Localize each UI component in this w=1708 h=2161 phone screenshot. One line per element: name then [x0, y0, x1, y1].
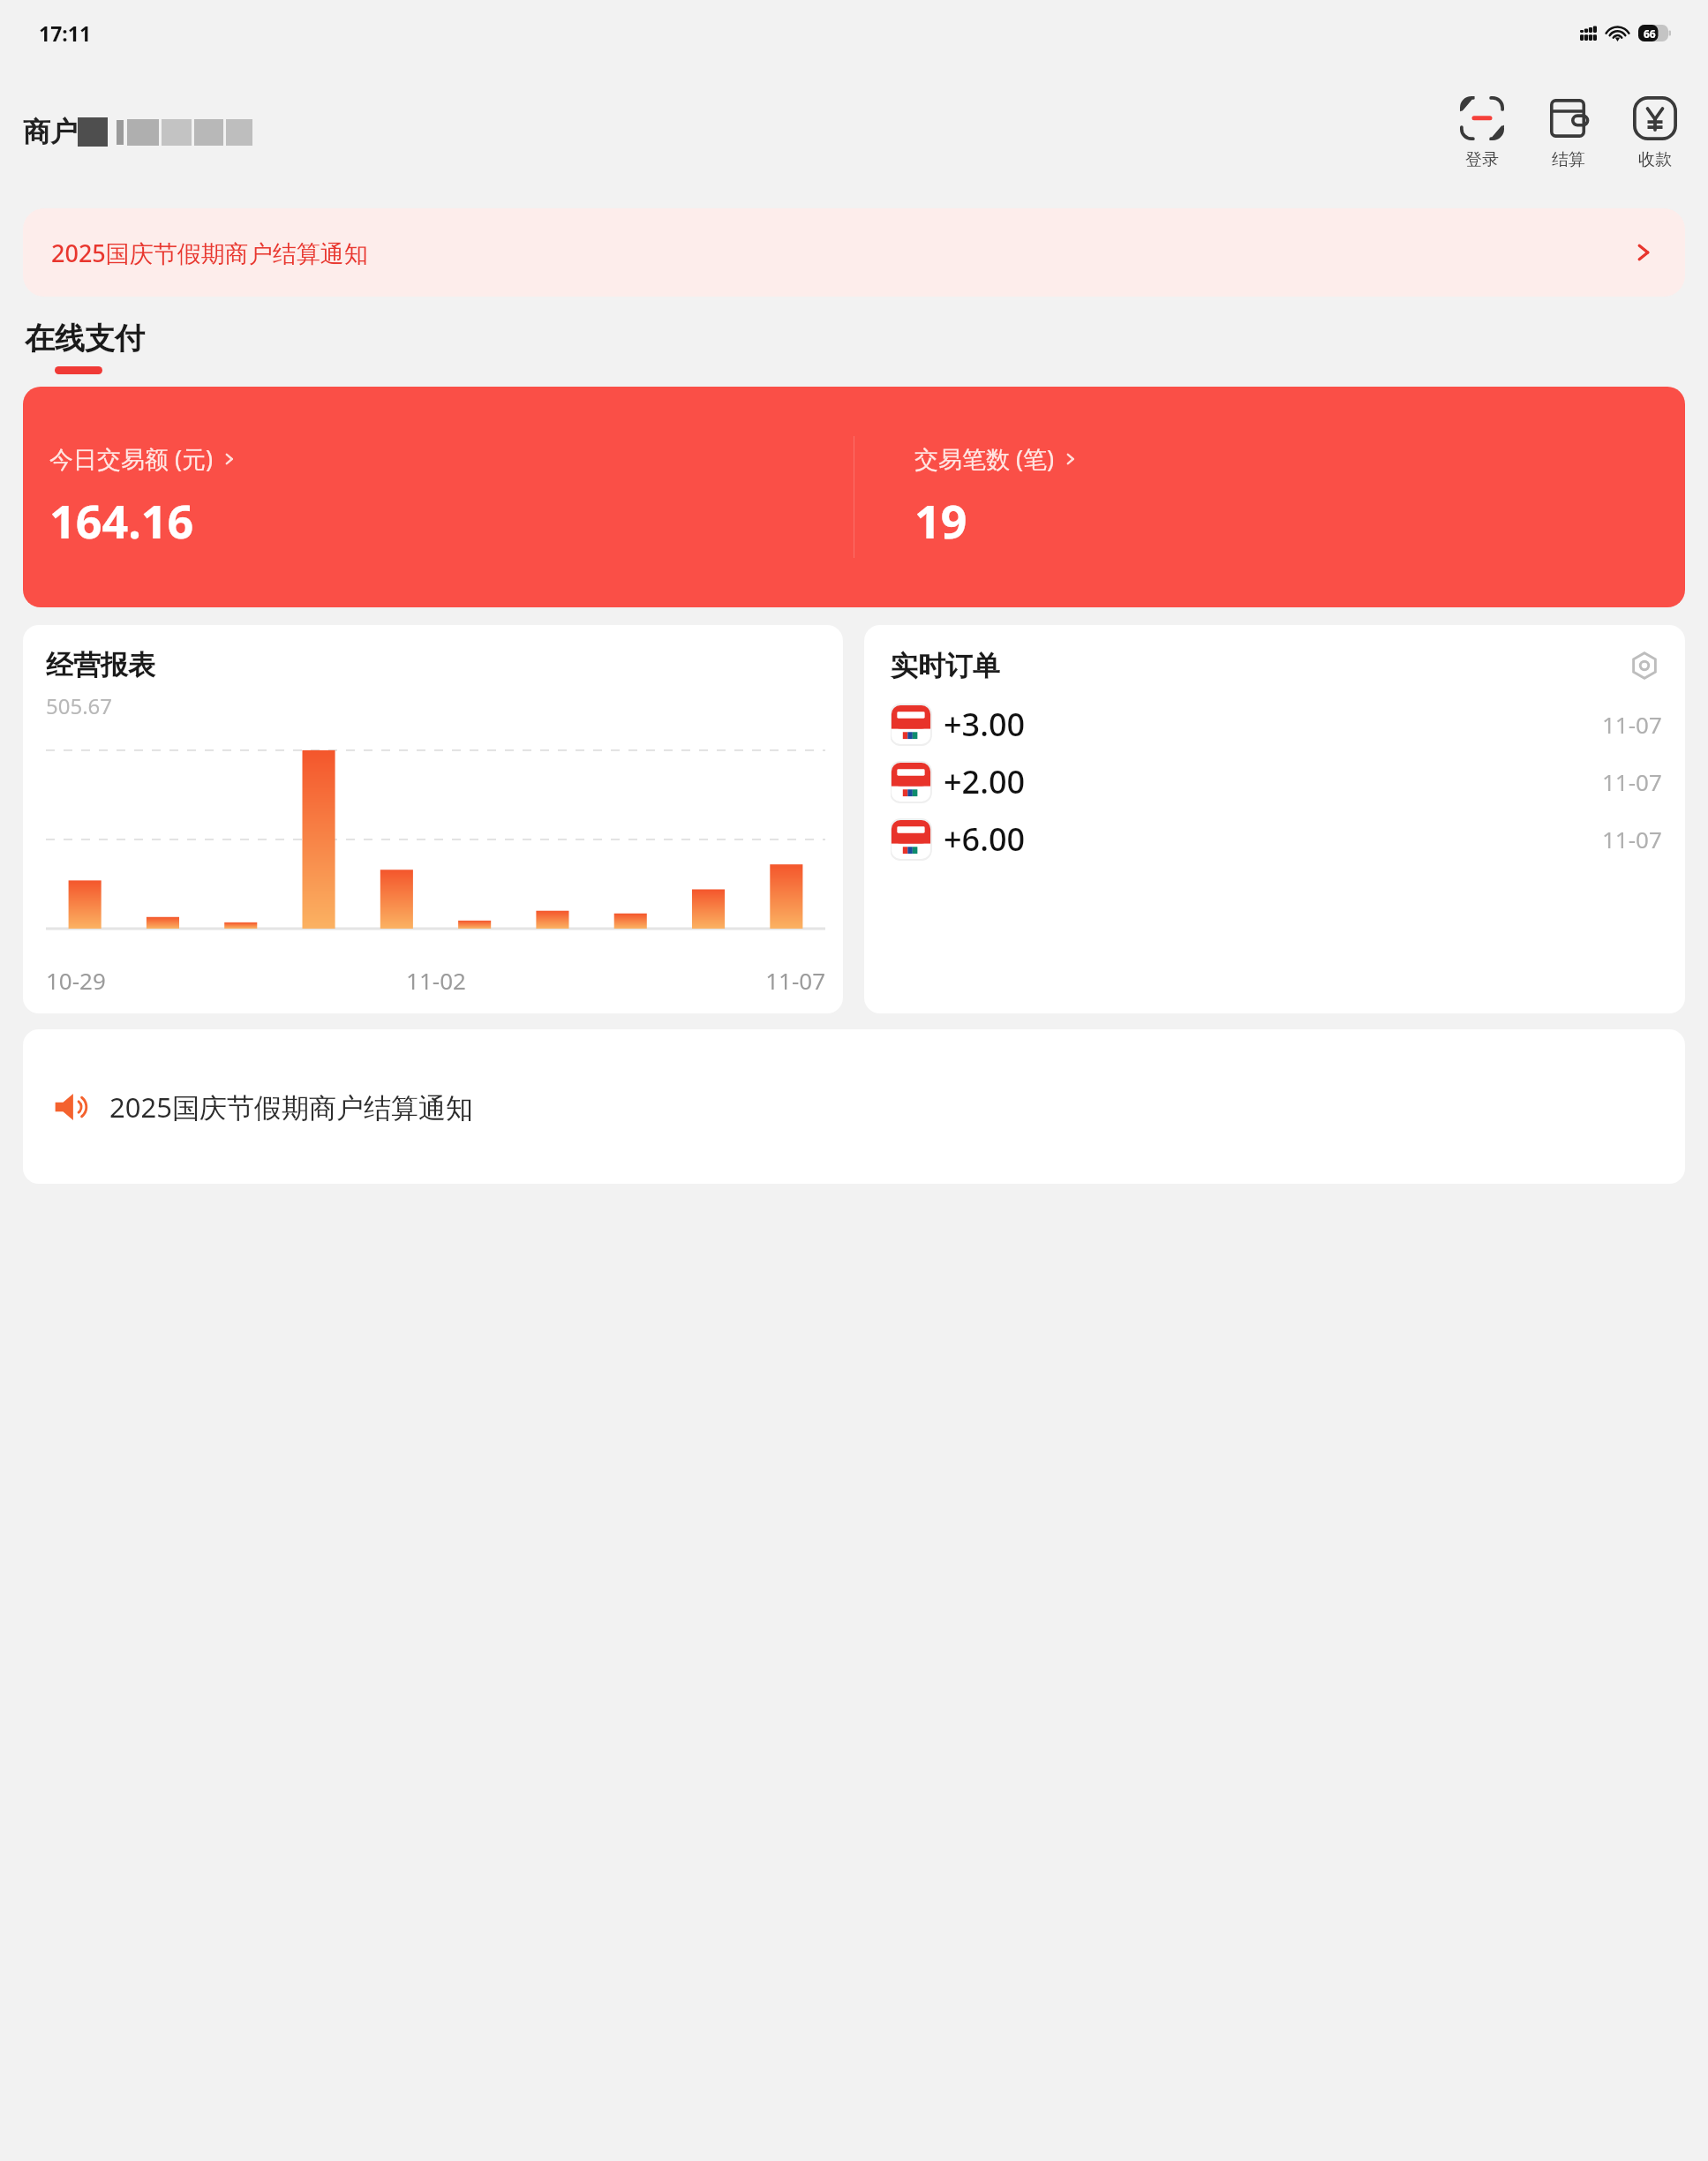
staticText: 19 — [914, 489, 967, 552]
staticText: 11-02 — [306, 965, 566, 996]
staticText: 164.16 — [49, 489, 194, 552]
staticText: 收款 — [1638, 149, 1672, 170]
staticText: 10-29 — [46, 965, 306, 996]
staticText: +2.00 — [944, 760, 1602, 803]
staticText: 商户 — [23, 115, 78, 149]
staticText: 2025国庆节假期商户结算通知 — [51, 237, 1630, 269]
staticText: 2025国庆节假期商户结算通知 — [109, 1088, 473, 1126]
staticText: 今日交易额 (元) — [49, 442, 214, 475]
staticText: 11-07 — [1602, 824, 1662, 855]
staticText: 登录 — [1465, 149, 1499, 170]
staticText: 17:11 — [39, 19, 92, 47]
button[interactable]: 设置 — [1627, 648, 1662, 683]
button[interactable]: +2.00 — [891, 760, 1662, 803]
staticText: +6.00 — [944, 817, 1602, 861]
button[interactable]: +3.00 — [891, 703, 1662, 746]
other: 结算 — [1547, 97, 1590, 139]
button[interactable]: 经营报表 — [23, 625, 843, 1013]
staticText: +3.00 — [944, 703, 1602, 746]
staticText: 交易笔数 (笔) — [914, 442, 1055, 475]
button[interactable]: 今日交易额 (元) — [23, 387, 854, 607]
other: 扫码登录 — [1460, 96, 1504, 140]
staticText: 在线支付 — [25, 320, 145, 358]
staticText: 实时订单 — [891, 649, 1627, 683]
button[interactable]: 扫码登录 — [1452, 90, 1512, 174]
button[interactable]: 交易笔数 (笔) — [854, 387, 1685, 607]
staticText: 结算 — [1552, 149, 1585, 170]
button[interactable]: 2025国庆节假期商户结算通知 — [23, 1029, 1685, 1184]
staticText: 505.67 — [46, 691, 113, 720]
button[interactable]: 结算 — [1539, 90, 1599, 174]
other: 收款 — [1633, 96, 1677, 140]
button[interactable]: +6.00 — [891, 817, 1662, 861]
staticText: 11-07 — [1602, 766, 1662, 797]
staticText: 66 — [1644, 26, 1656, 41]
button[interactable]: 实时订单 — [864, 625, 1685, 1013]
button[interactable]: 收款 — [1625, 90, 1685, 174]
staticText: 11-07 — [566, 965, 825, 996]
staticText: 经营报表 — [46, 648, 155, 682]
button[interactable]: 2025国庆节假期商户结算通知 — [23, 208, 1685, 297]
staticText: 11-07 — [1602, 709, 1662, 740]
